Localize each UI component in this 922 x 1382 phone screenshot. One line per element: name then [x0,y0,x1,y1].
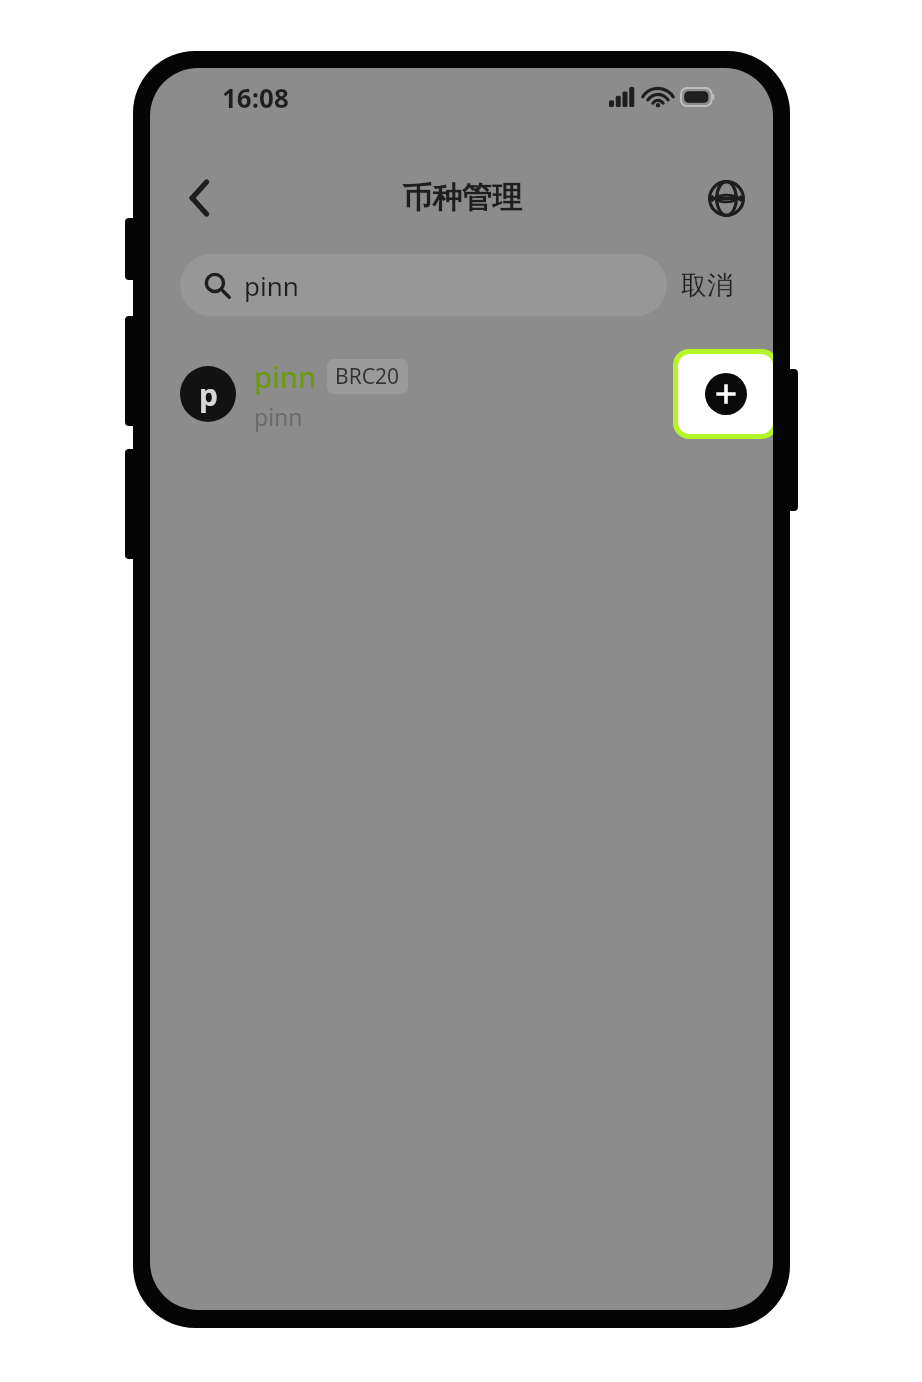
button[interactable]: Language [697,169,755,227]
staticText: BRC20 [335,362,400,391]
staticText: 16:08 [222,80,289,115]
button[interactable]: Add coin [678,354,773,434]
staticText: pinn [254,357,317,396]
button[interactable]: 取消 [667,261,747,310]
button[interactable]: pinn [180,254,667,316]
staticText: pinn [254,401,303,432]
staticText: 取消 [681,269,733,302]
staticText: 币种管理 [402,179,522,217]
staticText: p [199,374,218,415]
button[interactable]: p [150,344,773,444]
staticText: pinn [244,268,299,303]
button[interactable]: Back [170,169,228,227]
